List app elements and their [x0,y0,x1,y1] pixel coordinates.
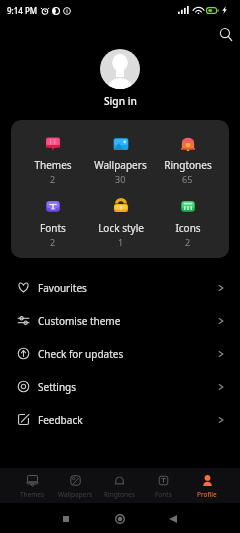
staticText: Themes [34,158,72,172]
button[interactable]: Search [213,22,239,48]
button[interactable]: Fonts [141,468,185,503]
staticText: 2 [50,173,56,185]
staticText: Wallpapers [94,158,147,172]
staticText: 2 [185,236,191,248]
button[interactable]: Themes [19,135,87,185]
button[interactable]: Icons [154,198,221,248]
staticText: Customise theme [38,314,121,328]
button[interactable]: Check for updates [0,337,240,370]
button[interactable]: Back [161,507,185,531]
button[interactable]: Feedback [0,403,240,436]
button[interactable]: Lock style [87,198,154,248]
staticText: 30 [115,173,126,185]
staticText: Settings [38,380,77,394]
staticText: Sign in [104,94,137,108]
button[interactable]: Recents [54,507,78,531]
button[interactable]: Favourites [0,271,240,304]
staticText: 1 [118,236,124,248]
button[interactable]: Fonts [19,198,87,248]
staticText: Themes [20,490,45,499]
staticText: Wallpapers [58,490,93,499]
button[interactable] [100,49,140,89]
button[interactable]: Customise theme [0,304,240,337]
staticText: Fonts [155,490,172,499]
button[interactable]: Themes [11,468,54,503]
staticText: 9:14 PM [7,5,38,16]
button[interactable]: Wallpapers [87,135,154,185]
button[interactable]: Settings [0,370,240,403]
button[interactable]: Profile [185,468,229,503]
staticText: Lock style [98,221,144,235]
staticText: Check for updates [38,347,124,361]
staticText: Profile [197,490,217,499]
staticText: Favourites [38,281,87,295]
button[interactable]: Ringtones [97,468,141,503]
staticText: Feedback [38,413,83,427]
staticText: Icons [175,221,201,235]
staticText: Fonts [40,221,66,235]
button[interactable]: Home [108,507,132,531]
button[interactable]: Ringtones [154,135,221,185]
staticText: 65 [182,173,193,185]
staticText: Ringtones [164,158,212,172]
button[interactable]: Wallpapers [54,468,97,503]
staticText: 2 [50,236,56,248]
staticText: Ringtones [104,490,135,499]
